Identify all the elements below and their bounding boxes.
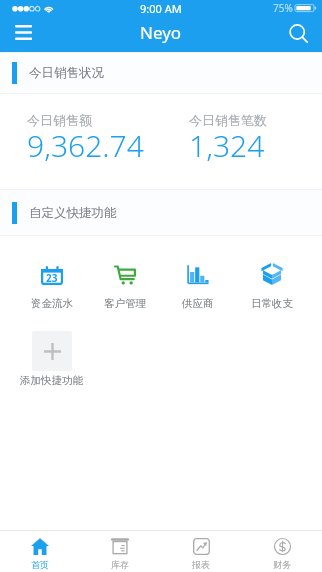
button[interactable]: 首页 — [0, 537, 80, 570]
button[interactable]: 报表 — [160, 537, 241, 570]
button[interactable]: Search — [276, 16, 322, 48]
staticText: 1,324 — [189, 125, 265, 166]
staticText: 今日销售笔数 — [189, 112, 267, 128]
button[interactable]: Open navigation menu — [0, 16, 46, 48]
button[interactable]: 库存 — [80, 537, 160, 570]
staticText: 自定义快捷功能 — [29, 205, 117, 221]
staticText: 报表 — [192, 559, 210, 570]
button[interactable]: Add shortcut — [15, 331, 88, 387]
staticText: 今日销售额 — [27, 112, 92, 128]
staticText: 客户管理 — [104, 297, 146, 310]
staticText: 75% — [273, 1, 293, 15]
button[interactable]: 供应商 — [161, 254, 235, 310]
button[interactable]: 日常收支 — [235, 254, 309, 310]
staticText: 供应商 — [182, 297, 214, 310]
staticText: 日常收支 — [251, 297, 293, 310]
button[interactable]: 客户管理 — [88, 254, 161, 310]
staticText: 9,362.74 — [27, 125, 144, 166]
staticText: Neyo — [140, 21, 182, 44]
staticText: 添加快捷功能 — [20, 374, 83, 387]
button[interactable]: 23 — [15, 254, 88, 310]
staticText: 财务 — [273, 559, 291, 570]
staticText: 资金流水 — [31, 297, 73, 310]
staticText: 库存 — [111, 559, 129, 570]
staticText: 23 — [46, 271, 58, 285]
staticText: 今日销售状况 — [29, 65, 104, 81]
staticText: 首页 — [31, 559, 49, 570]
button[interactable]: 财务 — [241, 537, 322, 570]
other: Add shortcut — [32, 331, 72, 371]
staticText: 9:00 AM — [140, 1, 182, 16]
